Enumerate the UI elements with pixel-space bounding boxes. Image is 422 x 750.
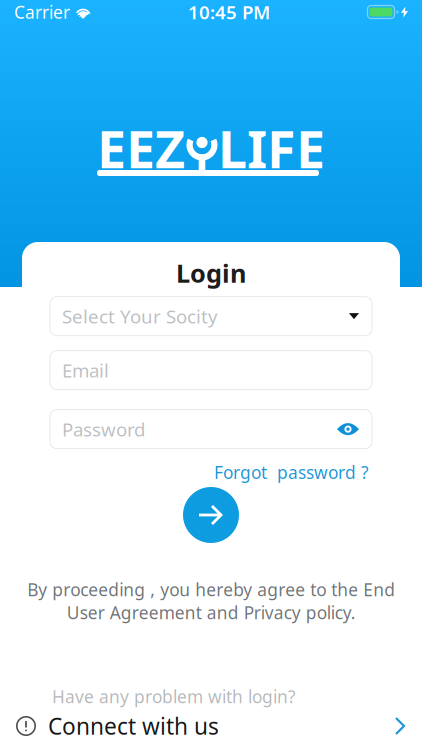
- button[interactable]: Email: [50, 351, 372, 390]
- staticText: Password: [62, 417, 145, 441]
- button[interactable]: Select Your Socity: [50, 297, 372, 336]
- staticText: 10:45 PM: [188, 0, 270, 24]
- staticText: Have any problem with login?: [52, 685, 296, 708]
- staticText: Email: [62, 358, 109, 382]
- staticText: LIFE: [218, 113, 325, 183]
- staticText: By proceeding , you hereby agree to the …: [27, 578, 395, 624]
- button[interactable]: Sign in: [183, 487, 239, 543]
- button[interactable]: Password: [50, 410, 372, 449]
- button[interactable]: Forgot password ?: [214, 461, 369, 484]
- staticText: Carrier: [14, 0, 70, 23]
- staticText: EEZ: [97, 113, 185, 183]
- button[interactable]: Connect with us: [0, 708, 422, 744]
- staticText: Forgot password ?: [214, 461, 369, 484]
- staticText: Select Your Socity: [62, 304, 218, 328]
- staticText: Login: [176, 256, 246, 290]
- staticText: Connect with us: [48, 711, 219, 741]
